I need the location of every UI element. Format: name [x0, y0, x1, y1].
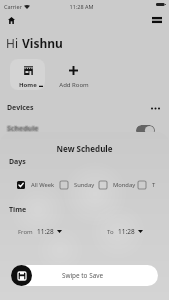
button[interactable]: More options [149, 104, 161, 112]
staticText: Monday [113, 181, 136, 189]
staticText: Days [9, 157, 26, 167]
button[interactable]: Home [10, 59, 45, 90]
staticText: Sunday [74, 181, 95, 189]
staticText: All Week [31, 181, 55, 189]
button[interactable]: Sunday [60, 181, 95, 189]
staticText: From [18, 228, 33, 236]
staticText: Vishnu [22, 35, 63, 51]
staticText: Schedule [6, 124, 38, 134]
staticText: Carrier [4, 3, 22, 10]
staticText: Hi [6, 35, 22, 51]
button[interactable]: Schedule toggle [136, 125, 155, 136]
staticText: Schedule [8, 123, 40, 133]
button[interactable]: To [107, 227, 143, 236]
button[interactable]: T [138, 181, 156, 189]
staticText: Schedule [6, 125, 38, 135]
staticText: 11:28 AM [61, 3, 102, 10]
staticText: T [152, 181, 156, 189]
button[interactable]: From [18, 227, 62, 236]
button[interactable]: All Week [17, 181, 55, 189]
staticText: New Schedule [0, 143, 169, 154]
staticText: Schedule [7, 124, 39, 134]
button[interactable]: Save [11, 265, 32, 286]
staticText: 11:28 [118, 227, 135, 236]
staticText: Time [9, 205, 27, 215]
button[interactable]: Menu [150, 13, 164, 27]
staticText: Devices [7, 103, 34, 113]
staticText: Schedule [8, 124, 40, 134]
staticText: Schedule [7, 124, 39, 134]
staticText: Add Room [57, 81, 91, 89]
staticText: Home [19, 81, 37, 89]
button[interactable]: Monday [99, 181, 136, 189]
staticText: Schedule [7, 123, 39, 133]
staticText: Schedule [7, 125, 39, 135]
button[interactable]: Add Room [57, 59, 91, 90]
staticText: Schedule [8, 125, 40, 135]
staticText: Schedule [6, 123, 38, 133]
button[interactable]: Swipe to Save [11, 265, 158, 286]
staticText: Swipe to Save [25, 271, 140, 280]
staticText: To [107, 228, 114, 236]
button[interactable]: Home [4, 13, 18, 27]
staticText: 11:28 [37, 227, 54, 236]
